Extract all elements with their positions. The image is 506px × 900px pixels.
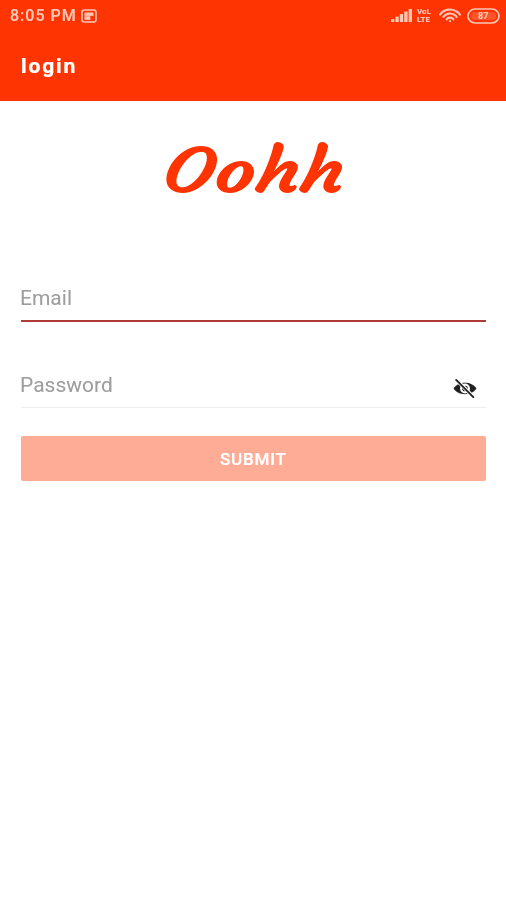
button[interactable]: Password	[21, 365, 486, 408]
staticText: 8:05 PM	[10, 6, 77, 25]
staticText: SUBMIT	[220, 449, 287, 469]
staticText: login	[21, 54, 78, 79]
staticText: Oohh	[163, 133, 346, 208]
staticText: VoL	[417, 7, 431, 16]
staticText: Password	[20, 373, 113, 398]
staticText: Email	[20, 286, 72, 311]
staticText: 87	[478, 11, 489, 22]
staticText: LTE	[417, 15, 430, 24]
staticText: Oohh	[162, 133, 345, 208]
staticText: Oohh	[162, 132, 345, 207]
staticText: Oohh	[162, 134, 345, 209]
button[interactable]: Email	[21, 278, 486, 322]
button[interactable]: Show password	[447, 370, 483, 406]
staticText: Oohh	[161, 133, 344, 208]
button[interactable]: SUBMIT	[21, 436, 486, 481]
